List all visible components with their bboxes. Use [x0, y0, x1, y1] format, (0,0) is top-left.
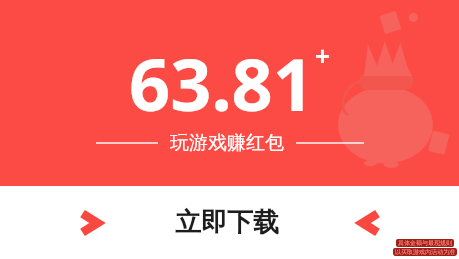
- staticText: 具体金额与最现规则: [398, 239, 452, 247]
- staticText: 玩游戏赚红包: [170, 131, 284, 155]
- staticText: 立即下载: [175, 206, 279, 239]
- staticText: 以买取游戏内活动为准: [395, 248, 455, 256]
- staticText: 63.81: [129, 34, 314, 132]
- button[interactable]: Next: [0, 186, 459, 259]
- other: Previous: [359, 210, 381, 236]
- other: Next: [79, 210, 101, 236]
- staticText: +: [315, 38, 330, 73]
